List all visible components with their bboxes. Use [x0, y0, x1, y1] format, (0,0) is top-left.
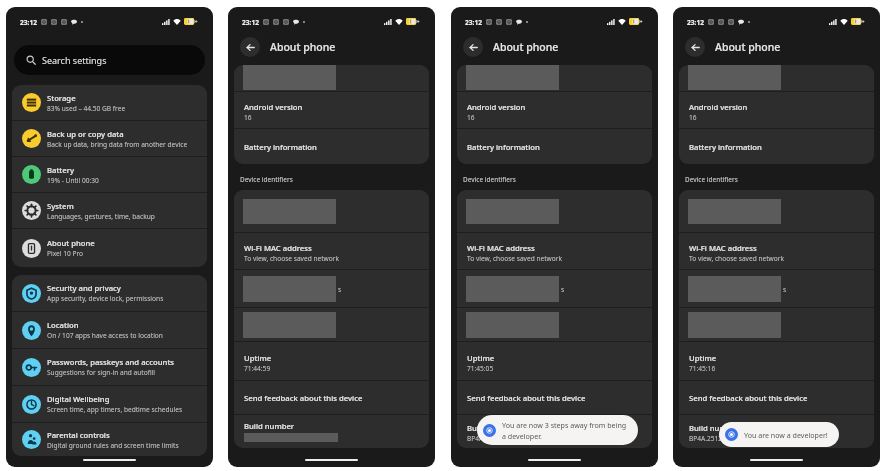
button[interactable] [234, 190, 429, 232]
staticText: You are now 3 steps away from being [502, 420, 627, 430]
staticText: Storage [47, 93, 76, 103]
button[interactable]: s [679, 270, 874, 307]
button[interactable]: You are now 3 steps away from being [477, 415, 638, 445]
staticText: System [47, 201, 74, 211]
button[interactable]: Back [685, 37, 705, 57]
staticText: 23:12 [20, 18, 37, 27]
staticText: s [783, 285, 787, 294]
button[interactable]: s [457, 270, 652, 307]
staticText: You are now a developer! [744, 430, 828, 440]
staticText: Uptime [689, 353, 717, 363]
button[interactable]: Build number [457, 415, 652, 448]
button[interactable]: s [234, 270, 429, 307]
button[interactable] [234, 65, 429, 91]
staticText: s [561, 285, 565, 294]
staticText: Build number [244, 421, 295, 431]
staticText: 16 [689, 113, 697, 122]
staticText: 71:44:59 [244, 364, 271, 373]
staticText: 83% used – 44.50 GB free [47, 104, 126, 113]
staticText: Wi-Fi MAC address [244, 243, 312, 253]
staticText: Battery [47, 165, 75, 175]
button[interactable] [457, 65, 652, 91]
button[interactable]: Uptime [234, 342, 429, 380]
staticText: 71:45:05 [467, 364, 494, 373]
button[interactable]: Battery information [457, 129, 652, 164]
button[interactable]: System [12, 193, 207, 228]
staticText: On / 107 apps have access to location [47, 331, 163, 340]
staticText: Back up or copy data [47, 129, 124, 139]
button[interactable] [679, 65, 874, 91]
staticText: Passwords, passkeys and accounts [47, 357, 175, 367]
button[interactable]: Wi-Fi MAC address [457, 233, 652, 269]
button[interactable]: Passwords, passkeys and accounts [12, 349, 207, 385]
button[interactable]: Storage [12, 85, 207, 120]
staticText: Pixel 10 Pro [47, 249, 84, 258]
staticText: Device identifiers [240, 175, 293, 184]
staticText: 23:12 [465, 18, 482, 27]
staticText: 71:45:16 [689, 364, 716, 373]
button[interactable] [679, 308, 874, 341]
staticText: Device identifiers [463, 175, 516, 184]
staticText: Wi-Fi MAC address [467, 243, 535, 253]
button[interactable]: Digital Wellbeing [12, 386, 207, 422]
button[interactable]: Build number [679, 415, 874, 448]
button[interactable]: Security and privacy [12, 275, 207, 311]
staticText: Android version [689, 102, 748, 112]
staticText: Send feedback about this device [467, 393, 586, 403]
button[interactable]: Search settings [14, 45, 205, 75]
staticText: About phone [493, 40, 559, 54]
button[interactable]: Send feedback about this device [234, 381, 429, 414]
staticText: Uptime [467, 353, 495, 363]
staticText: About phone [715, 40, 781, 54]
button[interactable] [679, 190, 874, 232]
button[interactable] [234, 308, 429, 341]
button[interactable]: Battery information [679, 129, 874, 164]
staticText: To view, choose saved network [467, 254, 563, 263]
staticText: To view, choose saved network [244, 254, 340, 263]
staticText: 23:12 [687, 18, 704, 27]
button[interactable]: Android version [234, 92, 429, 128]
button[interactable]: Android version [679, 92, 874, 128]
staticText: Security and privacy [47, 283, 121, 293]
staticText: Languages, gestures, time, backup [47, 212, 155, 221]
button[interactable]: Battery [12, 157, 207, 192]
button[interactable]: Back up or copy data [12, 121, 207, 156]
staticText: Uptime [244, 353, 272, 363]
staticText: Battery information [244, 142, 317, 152]
button[interactable]: Location [12, 312, 207, 348]
staticText: Digital Wellbeing [47, 394, 110, 404]
staticText: To view, choose saved network [689, 254, 785, 263]
staticText: BP4A.251205.002 [467, 434, 521, 443]
button[interactable]: Wi-Fi MAC address [234, 233, 429, 269]
button[interactable]: Send feedback about this device [679, 381, 874, 414]
staticText: Suggestions for sign-in and autofill [47, 368, 156, 377]
button[interactable]: Battery information [234, 129, 429, 164]
button[interactable]: Build number [234, 415, 429, 448]
staticText: Wi-Fi MAC address [689, 243, 757, 253]
staticText: 19% - Until 00:30 [47, 176, 99, 185]
button[interactable]: About phone [12, 229, 207, 267]
staticText: Build number [467, 423, 518, 433]
button[interactable]: Android version [457, 92, 652, 128]
staticText: About phone [47, 238, 95, 248]
button[interactable]: Uptime [457, 342, 652, 380]
staticText: Android version [467, 102, 526, 112]
button[interactable]: Send feedback about this device [457, 381, 652, 414]
button[interactable]: Wi-Fi MAC address [679, 233, 874, 269]
staticText: BP4A.251205.002 [689, 434, 743, 443]
button[interactable]: Uptime [679, 342, 874, 380]
staticText: 16 [244, 113, 252, 122]
staticText: Location [47, 320, 79, 330]
staticText: Search settings [42, 54, 107, 66]
button[interactable]: Back [240, 37, 260, 57]
staticText: Back up data, bring data from another de… [47, 140, 188, 149]
staticText: 23:12 [242, 18, 259, 27]
button[interactable]: Back [463, 37, 483, 57]
button[interactable]: Parental controls [12, 423, 207, 456]
staticText: Screen time, app timers, bedtime schedul… [47, 405, 183, 414]
staticText: Battery information [467, 142, 540, 152]
button[interactable] [457, 190, 652, 232]
button[interactable] [457, 308, 652, 341]
button[interactable]: You are now a developer! [719, 422, 839, 447]
staticText: 16 [467, 113, 475, 122]
